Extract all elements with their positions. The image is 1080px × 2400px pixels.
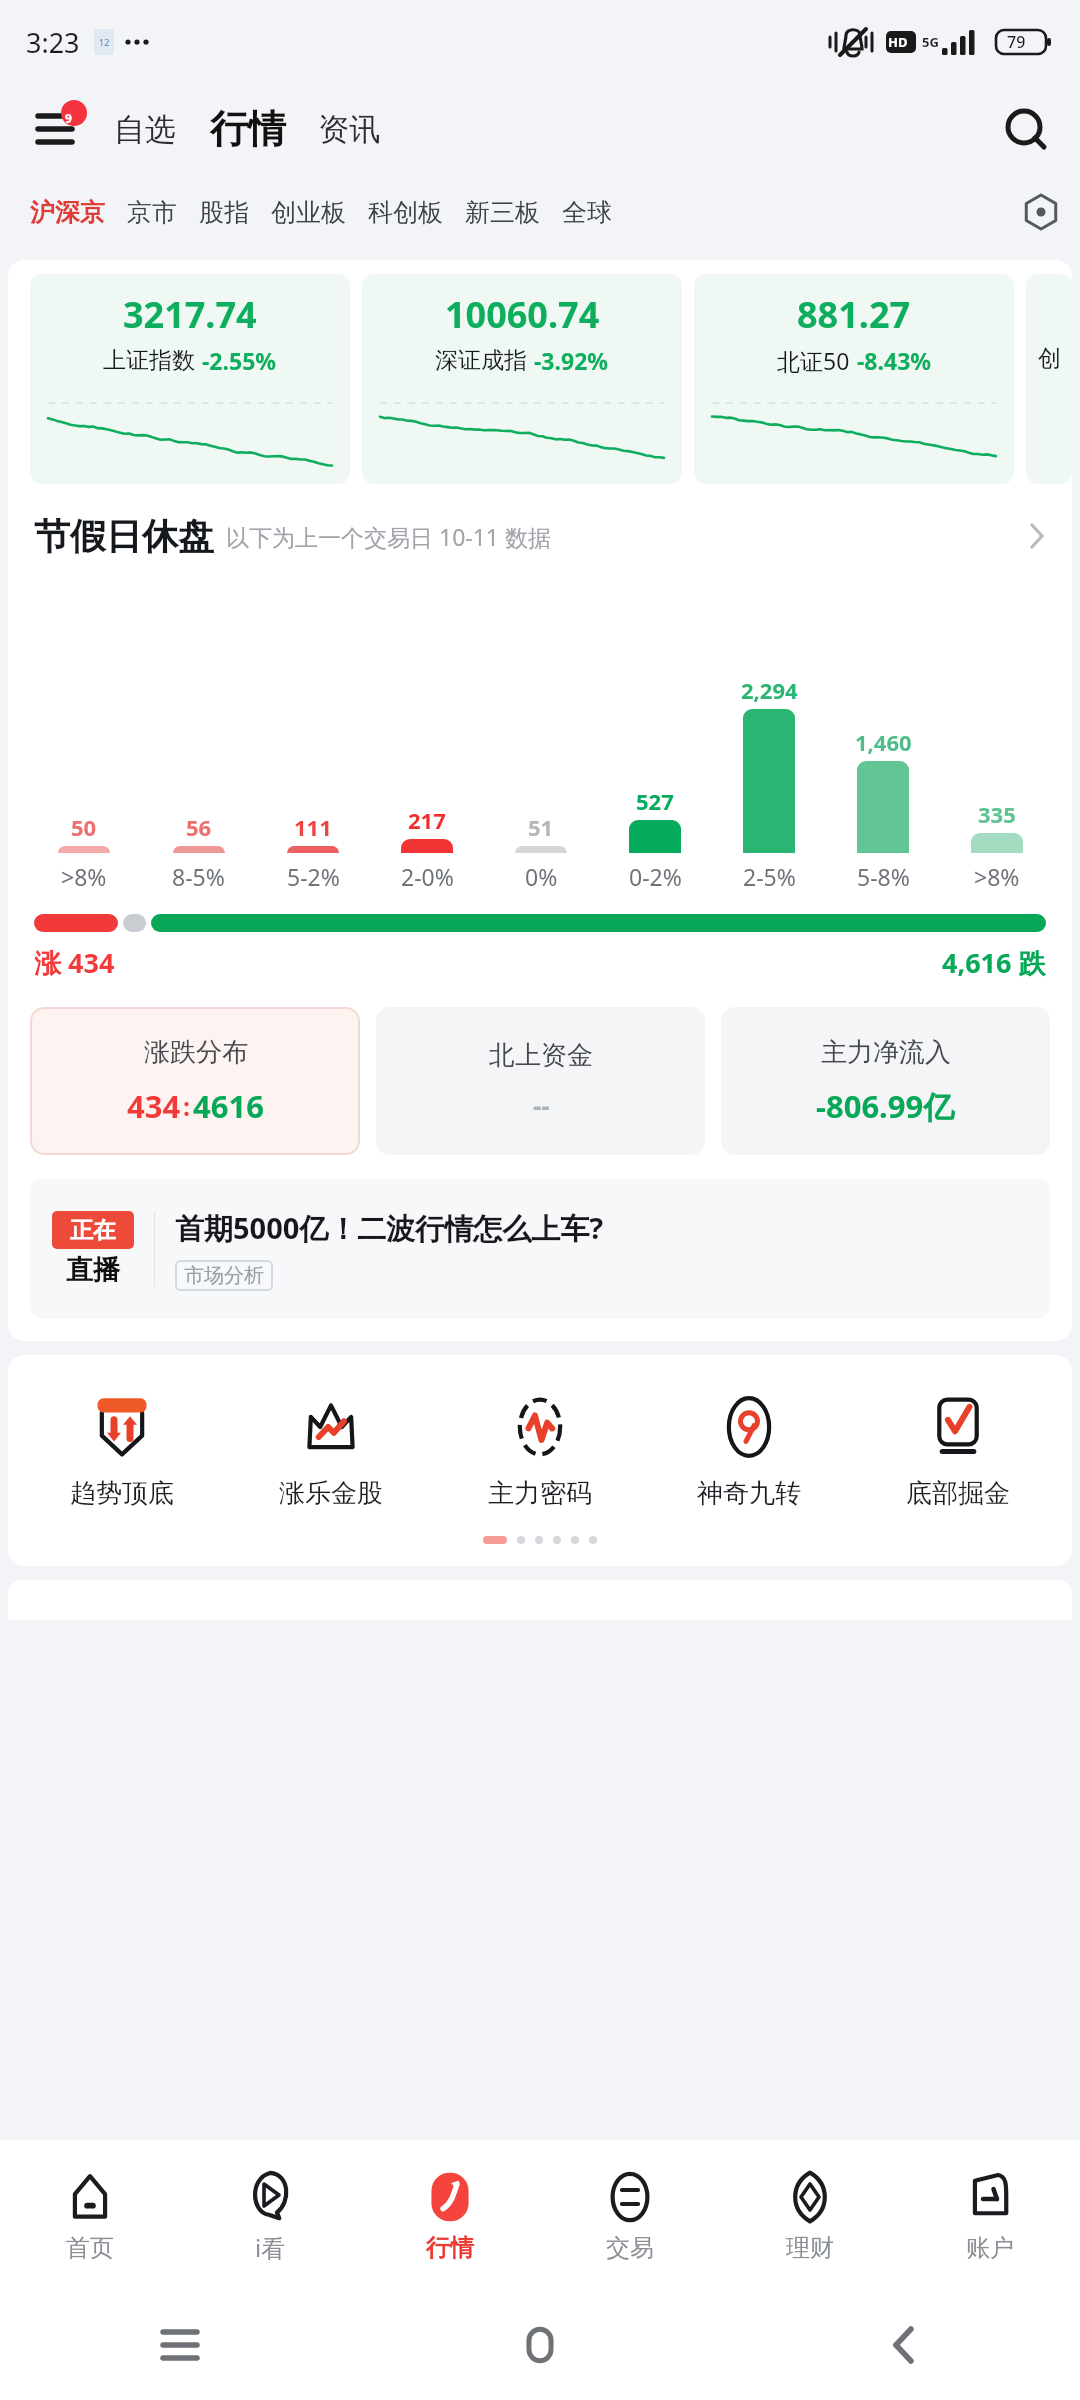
staticText: 底部掘金 <box>906 1477 1010 1510</box>
staticText: -8.43% <box>857 345 932 376</box>
staticText: 111 <box>294 812 332 842</box>
button[interactable]: 3217.74 <box>30 274 350 484</box>
button[interactable]: 节假日休盘 <box>34 506 1052 566</box>
staticText: 正在 <box>70 1216 116 1245</box>
staticText: 新三板 <box>465 197 540 228</box>
button[interactable]: 正在 <box>30 1179 1050 1319</box>
button[interactable]: 行情 <box>360 2140 540 2290</box>
button[interactable]: Menu <box>26 100 84 158</box>
button[interactable]: Back <box>720 2290 1080 2400</box>
button[interactable]: Recents <box>0 2290 360 2400</box>
staticText: 5-2% <box>287 861 340 892</box>
button[interactable]: 理财 <box>720 2140 900 2290</box>
staticText: 涨 434 <box>34 944 115 981</box>
button[interactable]: 账户 <box>900 2140 1080 2290</box>
staticText: 深证成指 <box>435 346 527 375</box>
staticText: 2-5% <box>743 861 796 892</box>
staticText: 上证指数 <box>103 346 195 375</box>
staticText: 10060.74 <box>445 290 600 339</box>
staticText: 沪深京 <box>30 197 105 228</box>
staticText: 首页 <box>66 2233 114 2263</box>
button[interactable]: 北上资金 <box>376 1007 705 1155</box>
staticText: 行情 <box>426 2233 474 2263</box>
button[interactable]: 主力密码 <box>435 1391 644 1510</box>
button[interactable]: 创业板 <box>263 189 354 236</box>
staticText: 12 <box>99 36 110 48</box>
staticText: 北证50 <box>777 345 850 376</box>
staticText: 资讯 <box>318 110 380 149</box>
staticText: 交易 <box>606 2233 654 2263</box>
staticText: 自选 <box>114 110 176 149</box>
staticText: 881.27 <box>797 290 911 339</box>
staticText: 8-5% <box>172 861 225 892</box>
staticText: 涨乐金股 <box>279 1477 383 1510</box>
button[interactable]: 沪深京 <box>22 189 113 236</box>
button[interactable]: 京市 <box>119 189 185 236</box>
button[interactable]: 底部掘金 <box>853 1391 1062 1510</box>
staticText: 主力密码 <box>488 1477 592 1510</box>
button[interactable]: 创 <box>1026 274 1072 484</box>
staticText: 4,616 跌 <box>942 944 1046 981</box>
staticText: 50 <box>71 812 97 842</box>
staticText: 股指 <box>199 197 249 228</box>
staticText: 趋势顶底 <box>70 1477 174 1510</box>
staticText: 2-0% <box>401 861 454 892</box>
staticText: 涨跌分布 <box>144 1036 248 1069</box>
staticText: 3:23 <box>26 24 80 61</box>
staticText: 9 <box>65 110 72 126</box>
button[interactable]: 自选 <box>110 104 180 155</box>
staticText: >8% <box>974 861 1020 892</box>
staticText: 2,294 <box>741 675 798 705</box>
button[interactable]: 行情 <box>206 103 290 155</box>
staticText: 5G <box>922 33 939 51</box>
button[interactable]: 全球 <box>554 189 620 236</box>
staticText: 市场分析 <box>184 1263 264 1288</box>
button[interactable]: 10060.74 <box>362 274 682 484</box>
staticText: 527 <box>636 786 674 816</box>
button[interactable]: 涨跌分布 <box>30 1007 360 1155</box>
staticText: i看 <box>255 2231 286 2264</box>
staticText: -806.99亿 <box>816 1085 955 1127</box>
staticText: 0% <box>525 861 558 892</box>
button[interactable]: 科创板 <box>360 189 451 236</box>
staticText: 217 <box>408 805 446 835</box>
staticText: 创 <box>1038 344 1061 373</box>
staticText: 理财 <box>786 2233 834 2263</box>
staticText: 首期5000亿！二波行情怎么上车? <box>175 1208 604 1248</box>
button[interactable]: i看 <box>180 2140 360 2290</box>
staticText: HD <box>888 33 908 51</box>
staticText: 0-2% <box>629 861 682 892</box>
button[interactable]: 新三板 <box>457 189 548 236</box>
button[interactable]: 涨乐金股 <box>226 1391 435 1510</box>
button[interactable]: 交易 <box>540 2140 720 2290</box>
staticText: 以下为上一个交易日 10-11 数据 <box>226 521 551 552</box>
button[interactable]: Home <box>360 2290 720 2400</box>
staticText: -3.92% <box>534 345 609 376</box>
staticText: >8% <box>61 861 107 892</box>
button[interactable]: 881.27 <box>694 274 1014 484</box>
button[interactable]: 股指 <box>191 189 257 236</box>
staticText: -2.55% <box>202 345 277 376</box>
staticText: -- <box>533 1088 550 1123</box>
staticText: 京市 <box>127 197 177 228</box>
staticText: 51 <box>528 812 554 842</box>
staticText: 1,460 <box>855 727 912 757</box>
button[interactable]: 趋势顶底 <box>18 1391 226 1510</box>
staticText: 434 <box>127 1085 181 1127</box>
button[interactable]: 首页 <box>0 2140 180 2290</box>
staticText: 56 <box>186 812 212 842</box>
staticText: 335 <box>978 799 1016 829</box>
staticText: 账户 <box>966 2233 1014 2263</box>
button[interactable]: 主力净流入 <box>721 1007 1050 1155</box>
button[interactable]: 神奇九转 <box>644 1391 853 1510</box>
button[interactable]: 资讯 <box>314 104 384 155</box>
staticText: 科创板 <box>368 197 443 228</box>
staticText: 神奇九转 <box>697 1477 801 1510</box>
staticText: 主力净流入 <box>821 1036 951 1069</box>
staticText: 直播 <box>66 1253 120 1287</box>
button[interactable]: Search <box>998 101 1054 157</box>
button[interactable]: More markets <box>1018 189 1064 235</box>
staticText: 北上资金 <box>489 1039 593 1072</box>
staticText: 79 <box>1007 31 1026 53</box>
staticText: 创业板 <box>271 197 346 228</box>
